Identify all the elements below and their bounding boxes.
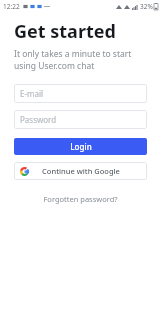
staticText: Get started: [14, 19, 116, 44]
button[interactable]: Login: [14, 138, 147, 155]
staticText: Continue with Google: [42, 166, 120, 176]
staticText: E-mail: [20, 88, 44, 99]
staticText: 12:22: [3, 2, 20, 11]
button[interactable]: Continue with Google: [14, 162, 147, 180]
staticText: Login: [70, 141, 92, 152]
button[interactable]: E-mail: [14, 84, 147, 103]
staticText: Forgotten password?: [43, 194, 118, 204]
button[interactable]: Password: [14, 110, 147, 129]
button[interactable]: Forgotten password?: [0, 192, 161, 206]
staticText: It only takes a minute to start using Us…: [14, 48, 132, 72]
staticText: 32%: [140, 2, 153, 11]
staticText: Password: [20, 114, 57, 125]
